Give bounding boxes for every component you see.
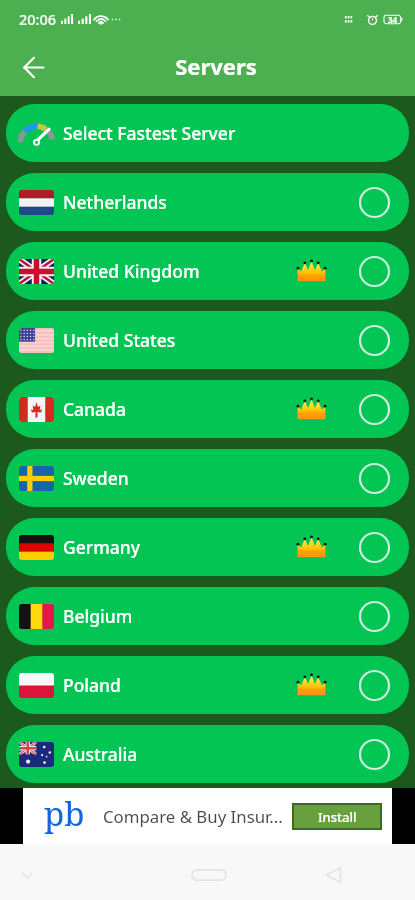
button[interactable]: United Kingdom	[6, 242, 409, 300]
staticText: United Kingdom	[63, 259, 200, 283]
button[interactable]: United States	[6, 311, 409, 369]
button[interactable]: Select Fastest Server	[6, 104, 409, 162]
button[interactable]: Canada	[6, 380, 409, 438]
staticText: Install	[318, 808, 357, 826]
staticText: Australia	[63, 742, 138, 766]
button[interactable]: Poland	[6, 656, 409, 714]
staticText: Germany	[63, 535, 140, 559]
staticText: Netherlands	[63, 190, 167, 214]
button[interactable]: Australia	[6, 725, 409, 783]
staticText: Servers	[175, 51, 257, 81]
button[interactable]: Sweden	[6, 449, 409, 507]
button[interactable]: Germany	[6, 518, 409, 576]
button[interactable]: Recents	[312, 853, 356, 897]
staticText: Select Fastest Server	[63, 121, 236, 145]
staticText: Compare & Buy Insur...	[103, 805, 283, 828]
staticText: United States	[63, 328, 176, 352]
button[interactable]: Belgium	[6, 587, 409, 645]
staticText: pb	[44, 791, 85, 836]
staticText: 20:06	[19, 9, 57, 29]
staticText: 34	[388, 14, 398, 25]
button[interactable]: Install	[294, 805, 380, 828]
button[interactable]: Netherlands	[6, 173, 409, 231]
button[interactable]: Home	[181, 847, 237, 900]
button[interactable]: Back	[11, 45, 55, 89]
staticText: Poland	[63, 673, 121, 697]
staticText: Sweden	[63, 466, 129, 490]
staticText: Belgium	[63, 604, 133, 628]
staticText: Canada	[63, 397, 126, 421]
